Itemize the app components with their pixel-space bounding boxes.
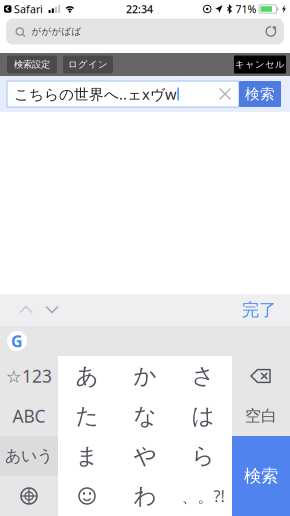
button[interactable]: さ <box>174 356 232 396</box>
button[interactable]: た <box>58 396 116 436</box>
staticText: わ <box>133 482 156 510</box>
staticText: キャンセル <box>235 59 285 70</box>
staticText: こちらの世界へ..ェxヴw <box>14 84 177 104</box>
staticText: ログイン <box>68 59 108 70</box>
staticText: 検索設定 <box>14 59 50 70</box>
staticText: 検索 <box>244 465 278 487</box>
button[interactable]: ☆123 <box>0 356 58 396</box>
staticText: 22:34 <box>126 2 153 16</box>
staticText: や <box>133 442 156 470</box>
button[interactable]: あ <box>58 356 116 396</box>
staticText: Safari <box>14 2 43 16</box>
button[interactable]: あいう <box>0 436 58 476</box>
staticText: 71% <box>235 2 256 16</box>
button[interactable]: Previous field <box>13 295 39 325</box>
button[interactable] <box>0 476 58 516</box>
staticText: あいう <box>5 446 53 466</box>
staticText: 、。?! <box>181 485 224 507</box>
button[interactable]: 完了 <box>232 295 286 325</box>
button[interactable]: わ <box>116 476 174 516</box>
staticText: 検索 <box>245 85 275 103</box>
button[interactable]: 検索設定 <box>7 55 57 73</box>
button[interactable]: か <box>116 356 174 396</box>
staticText: さ <box>191 362 214 390</box>
staticText: G <box>11 330 23 352</box>
staticText: 完了 <box>242 299 276 321</box>
button[interactable]: Back to Safari <box>4 2 43 16</box>
button[interactable]: 空白 <box>232 396 290 436</box>
button[interactable]: 検索 <box>232 436 290 516</box>
staticText: ら <box>191 442 214 470</box>
button[interactable]: 検索 <box>239 81 281 107</box>
button[interactable]: や <box>116 436 174 476</box>
button[interactable]: ま <box>58 436 116 476</box>
button[interactable]: がががばば <box>6 18 258 44</box>
staticText: あ <box>75 362 98 390</box>
staticText: 空白 <box>245 406 277 426</box>
staticText: な <box>133 402 156 430</box>
button[interactable]: ら <box>174 436 232 476</box>
staticText: た <box>75 402 98 430</box>
button[interactable]: は <box>174 396 232 436</box>
button[interactable]: な <box>116 396 174 436</box>
button[interactable]: Reload page <box>258 18 284 44</box>
staticText: ☆123 <box>6 364 52 387</box>
button[interactable]: ABC <box>0 396 58 436</box>
staticText: は <box>191 402 214 430</box>
button[interactable]: Clear search <box>211 81 239 107</box>
staticText: か <box>133 362 156 390</box>
button[interactable] <box>58 476 116 516</box>
button[interactable]: Next field <box>39 295 65 325</box>
staticText: ABC <box>12 404 45 427</box>
staticText: ま <box>75 442 98 470</box>
button[interactable]: キャンセル <box>234 55 286 73</box>
staticText: がががばば <box>31 26 81 37</box>
button[interactable]: 、。?! <box>174 476 232 516</box>
button[interactable] <box>232 356 290 396</box>
button[interactable]: ログイン <box>63 55 113 73</box>
button[interactable]: Gboard settings <box>2 326 32 356</box>
